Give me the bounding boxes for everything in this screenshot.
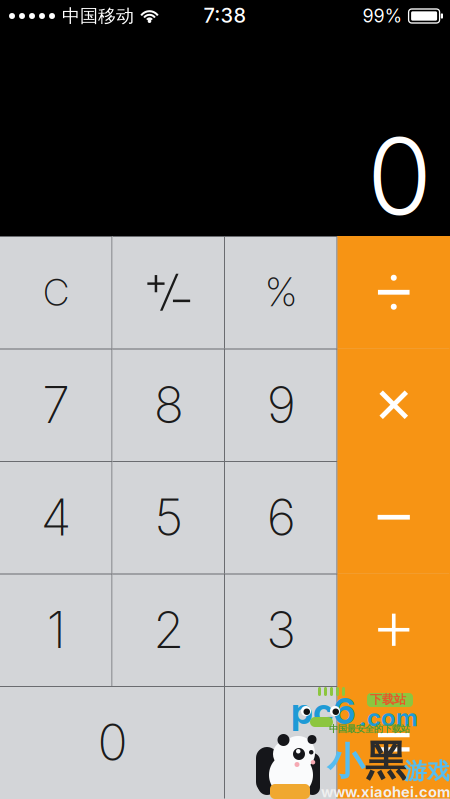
staticText: www.xiaohei.com: [321, 783, 450, 799]
staticText: 中国最安全的下载站: [329, 723, 410, 735]
staticText: 7: [42, 374, 70, 435]
staticText: C: [43, 270, 69, 315]
staticText: 7:38: [203, 3, 246, 28]
staticText: 99%: [363, 5, 403, 27]
staticText: 下载站: [370, 692, 406, 707]
staticText: 中国移动: [62, 5, 134, 27]
staticText: 0: [367, 113, 432, 240]
staticText: .com: [359, 703, 418, 732]
button[interactable]: Eight: [112, 348, 225, 461]
button[interactable]: Plus: [337, 573, 450, 686]
button[interactable]: Minus: [337, 461, 450, 573]
button[interactable]: Four: [0, 461, 112, 573]
staticText: 小: [327, 738, 364, 785]
staticText: pc6: [291, 689, 356, 733]
button[interactable]: Divide: [337, 236, 450, 348]
button[interactable]: Five: [112, 461, 225, 573]
button[interactable]: Clear: [0, 236, 112, 348]
button[interactable]: Zero: [0, 686, 225, 798]
button[interactable]: Nine: [225, 348, 337, 461]
staticText: 3: [266, 599, 296, 660]
button[interactable]: Percent: [225, 236, 337, 348]
button[interactable]: One: [0, 573, 112, 686]
staticText: 0: [97, 712, 127, 772]
button[interactable]: Seven: [0, 348, 112, 461]
staticText: 1: [47, 599, 66, 660]
staticText: %: [265, 269, 297, 316]
staticText: .: [274, 712, 288, 772]
staticText: 黑: [365, 735, 406, 787]
button[interactable]: Two: [112, 573, 225, 686]
staticText: 9: [267, 374, 296, 435]
staticText: 2: [153, 599, 184, 660]
staticText: 4: [41, 487, 72, 547]
button[interactable]: Equals: [337, 686, 450, 798]
staticText: 8: [154, 374, 184, 435]
button[interactable]: Three: [225, 573, 337, 686]
button[interactable]: Decimal point: [225, 686, 337, 798]
button[interactable]: Six: [225, 461, 337, 573]
button[interactable]: Multiply: [337, 348, 450, 461]
staticText: 6: [267, 487, 296, 547]
staticText: 游戏: [404, 757, 450, 786]
button[interactable]: Plus minus: [112, 236, 225, 348]
staticText: 5: [154, 487, 183, 547]
